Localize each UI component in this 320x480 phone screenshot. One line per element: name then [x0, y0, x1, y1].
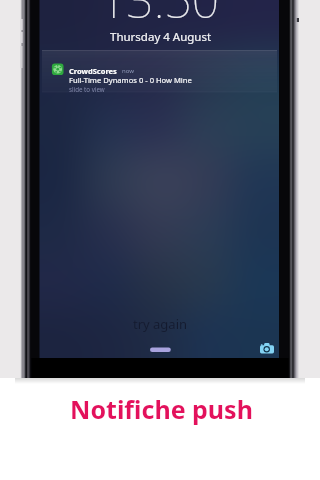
staticText: Full-Time Dynamos 0 - 0 How Mine	[69, 75, 192, 85]
staticText: Thursday 4 August	[110, 29, 212, 45]
staticText: 13:50	[99, 0, 220, 32]
button[interactable]: CrowdScores	[42, 50, 277, 92]
staticText: now	[122, 67, 134, 75]
staticText: try again	[133, 315, 188, 333]
button[interactable]: Camera	[255, 338, 279, 362]
staticText: CrowdScores	[69, 66, 117, 76]
staticText: slide to view	[69, 85, 105, 93]
staticText: Notifiche push	[70, 392, 253, 426]
